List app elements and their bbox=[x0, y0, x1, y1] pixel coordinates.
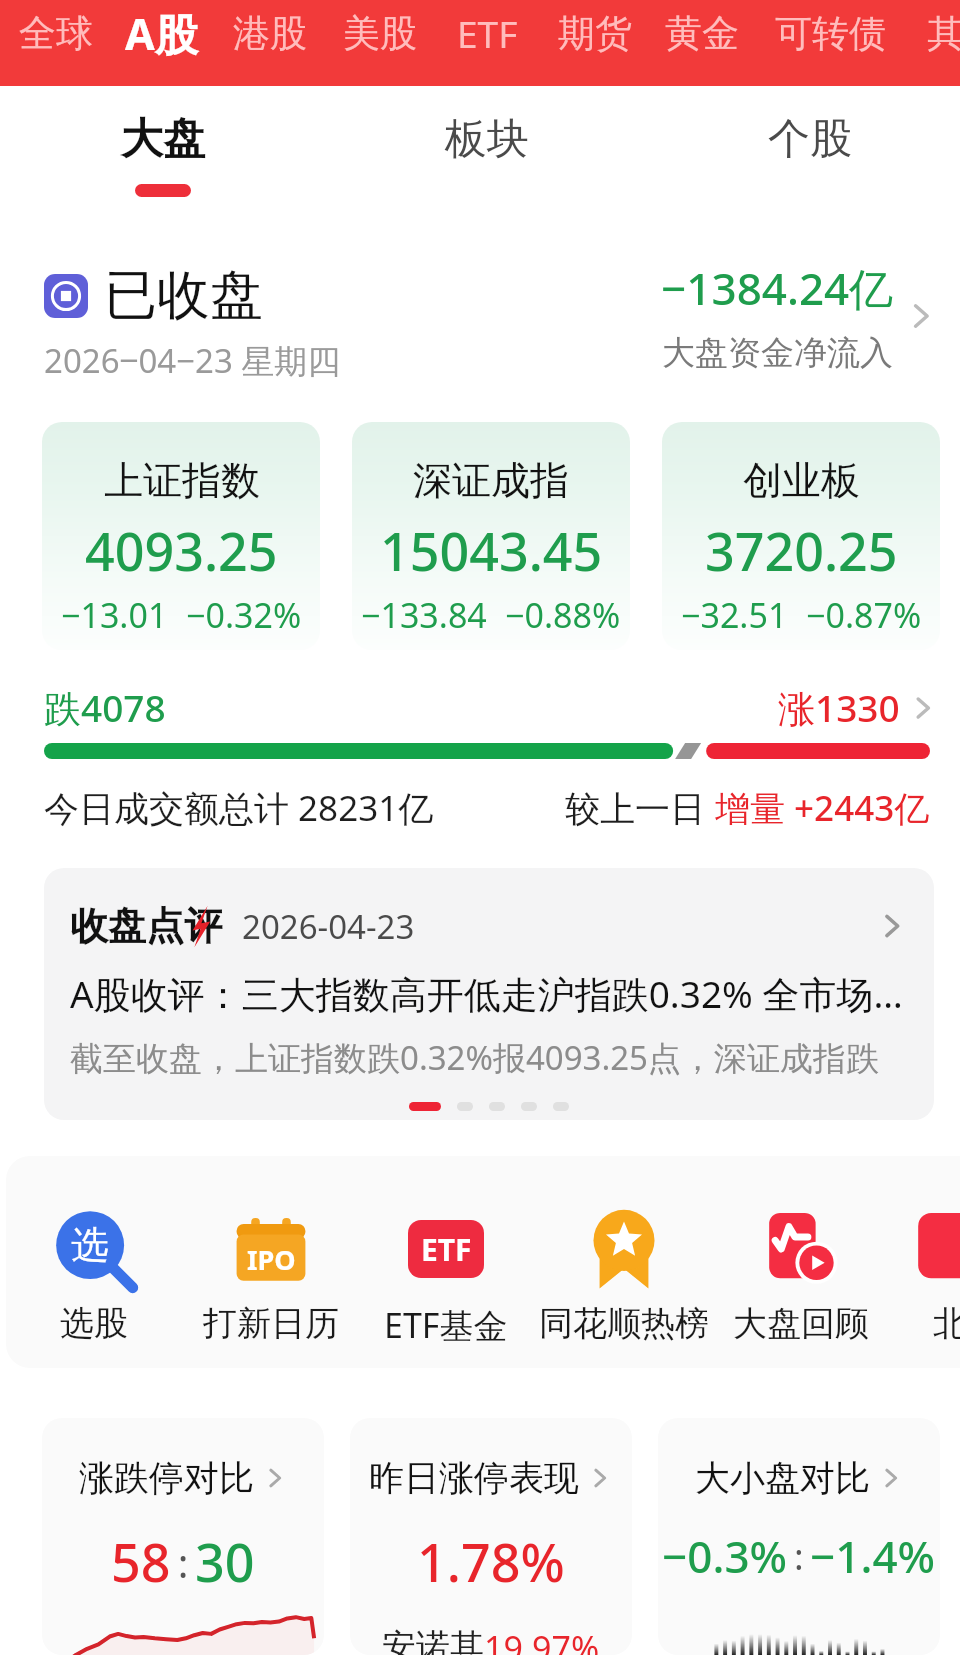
staticText: −1384.24亿 bbox=[661, 258, 894, 318]
button[interactable]: 全球 bbox=[0, 0, 116, 76]
staticText: 创业板 bbox=[743, 456, 860, 505]
staticText: 15043.45 bbox=[380, 515, 603, 586]
staticText: 2026‒04−23 星期四 bbox=[44, 338, 341, 383]
button[interactable]: 涨跌停对比 bbox=[42, 1418, 324, 1655]
staticText: 3720.25 bbox=[705, 515, 898, 586]
staticText: −32.51 bbox=[681, 592, 788, 638]
button[interactable]: 查看大盘资金净流入 bbox=[904, 299, 938, 333]
button[interactable]: 美股 bbox=[320, 0, 440, 76]
staticText: 美股 bbox=[343, 10, 417, 57]
button[interactable]: 同花顺热榜 bbox=[534, 1156, 714, 1368]
button[interactable]: 可转债 bbox=[770, 0, 890, 76]
staticText: 涨1330 bbox=[778, 682, 900, 733]
button[interactable]: 港股 bbox=[210, 0, 330, 76]
staticText: 安诺其 bbox=[382, 1625, 484, 1655]
staticText: 截至收盘，上证指数跌0.32%报4093.25点，深证成指跌0…. bbox=[70, 1035, 908, 1080]
button[interactable]: IPO bbox=[181, 1156, 361, 1368]
staticText: ETF基金 bbox=[384, 1302, 508, 1348]
staticText: −0.88% bbox=[505, 592, 621, 638]
staticText: 涨跌停对比 bbox=[79, 1456, 254, 1500]
button[interactable]: ETF bbox=[356, 1156, 536, 1368]
staticText: ETF bbox=[421, 1229, 472, 1270]
staticText: 昨日涨停表现 bbox=[369, 1456, 579, 1500]
staticText: 大小盘对比 bbox=[695, 1456, 870, 1500]
staticText: : bbox=[171, 1535, 195, 1589]
button[interactable]: 板块 bbox=[377, 86, 597, 236]
staticText: 跌4078 bbox=[44, 682, 166, 733]
staticText: 选股 bbox=[60, 1302, 128, 1345]
staticText: A股收评：三大指数高开低走沪指跌0.32% 全市场… bbox=[70, 968, 903, 1019]
staticText: 2026-04-23 bbox=[242, 904, 415, 949]
staticText: 30 bbox=[195, 1526, 255, 1597]
staticText: 上证指数 bbox=[104, 456, 260, 505]
button[interactable]: 深证成指 bbox=[352, 422, 630, 650]
button[interactable]: 上证指数 bbox=[42, 422, 320, 650]
button[interactable]: 个股 bbox=[700, 86, 920, 236]
staticText: 打新日历 bbox=[203, 1302, 339, 1345]
button[interactable]: 创业板 bbox=[662, 422, 940, 650]
staticText: IPO bbox=[247, 1241, 296, 1278]
button[interactable]: 大盘回顾 bbox=[711, 1156, 891, 1368]
button[interactable]: A股 bbox=[101, 0, 221, 76]
staticText: 增量 +2443亿 bbox=[715, 784, 930, 832]
staticText: ETF bbox=[457, 8, 518, 58]
staticText: 可转债 bbox=[775, 10, 886, 57]
button[interactable]: 昨日涨停表现 bbox=[350, 1418, 632, 1655]
staticText: 已收盘 bbox=[104, 262, 263, 329]
button[interactable]: 涨跌家数详情 bbox=[908, 693, 938, 723]
staticText: 板块 bbox=[445, 113, 529, 166]
staticText: 4093.25 bbox=[85, 515, 278, 586]
staticText: 其 bbox=[927, 10, 960, 57]
staticText: A股 bbox=[125, 4, 198, 63]
staticText: 黄金 bbox=[665, 10, 739, 57]
staticText: 大盘回顾 bbox=[733, 1302, 869, 1345]
button[interactable]: 选 bbox=[6, 1156, 184, 1368]
staticText: −1.4% bbox=[810, 1526, 936, 1586]
button[interactable]: 北 bbox=[860, 1156, 960, 1368]
button[interactable]: 期货 bbox=[535, 0, 655, 76]
staticText: 1.78% bbox=[417, 1526, 565, 1597]
staticText: 58 bbox=[111, 1526, 171, 1597]
button[interactable]: 收盘点评 bbox=[44, 868, 934, 1120]
button[interactable]: 其 bbox=[885, 0, 960, 76]
staticText: 深证成指 bbox=[413, 456, 569, 505]
staticText: 个股 bbox=[768, 113, 852, 166]
staticText: 今日成交额总计 28231亿 bbox=[44, 784, 434, 832]
staticText: 大盘资金净流入 bbox=[662, 332, 893, 374]
staticText: −0.3% bbox=[662, 1526, 788, 1586]
staticText: −133.84 bbox=[361, 592, 487, 638]
staticText: 港股 bbox=[233, 10, 307, 57]
staticText: 大盘 bbox=[121, 113, 205, 166]
staticText: −13.01 bbox=[61, 592, 168, 638]
staticText: 选 bbox=[71, 1221, 109, 1269]
button[interactable]: 大小盘对比 bbox=[658, 1418, 940, 1655]
staticText: 北 bbox=[933, 1302, 960, 1345]
staticText: : bbox=[788, 1532, 810, 1581]
staticText: 收盘点评 bbox=[70, 902, 222, 950]
staticText: −0.87% bbox=[806, 592, 922, 638]
staticText: 期货 bbox=[558, 10, 632, 57]
staticText: 同花顺热榜 bbox=[539, 1302, 709, 1345]
staticText: 较上一日 bbox=[565, 784, 715, 832]
staticText: −0.32% bbox=[186, 592, 302, 638]
button[interactable]: 大盘 bbox=[53, 86, 273, 236]
staticText: 全球 bbox=[19, 10, 93, 57]
button[interactable]: 黄金 bbox=[642, 0, 762, 76]
staticText: 19.97% bbox=[484, 1625, 600, 1655]
button[interactable]: ETF bbox=[427, 0, 547, 76]
